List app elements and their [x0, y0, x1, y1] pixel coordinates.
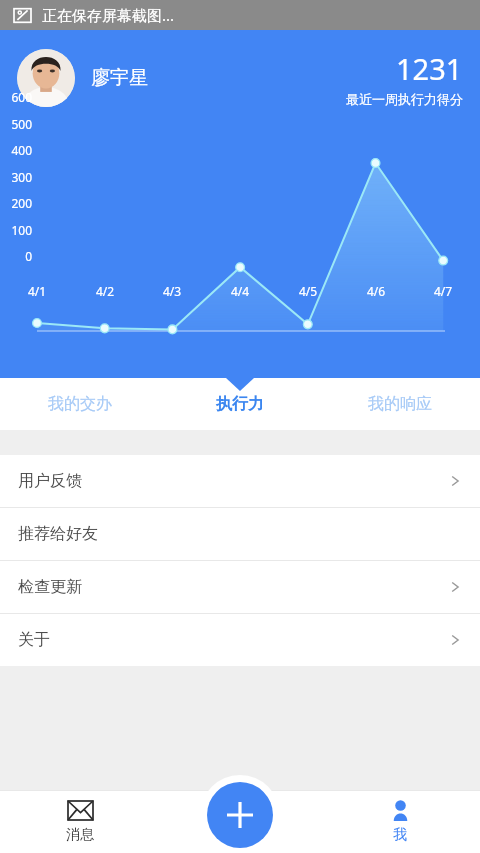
staticText: 最近一周执行力得分 [346, 91, 463, 107]
staticText: 我的响应 [368, 394, 432, 414]
button[interactable]: Add [207, 782, 273, 848]
staticText: 消息 [66, 826, 94, 844]
button[interactable]: Profile photo [17, 49, 75, 107]
staticText: 200 [0, 195, 32, 211]
staticText: 正在保存屏幕截图... [42, 5, 175, 25]
button[interactable]: 推荐给好友 [0, 508, 480, 560]
staticText: 0 [0, 248, 32, 264]
staticText: 500 [0, 116, 32, 132]
staticText: 廖宇星 [91, 66, 148, 90]
staticText: 推荐给好友 [18, 524, 98, 544]
staticText: 4/5 [288, 283, 328, 299]
staticText: 执行力 [216, 394, 264, 414]
button[interactable]: 我的响应 [320, 378, 480, 430]
staticText: 4/1 [17, 283, 57, 299]
button[interactable]: 检查更新 [0, 561, 480, 613]
staticText: 我的交办 [48, 394, 112, 414]
button[interactable]: 我 [320, 790, 480, 853]
staticText: 4/4 [220, 283, 260, 299]
staticText: 400 [0, 142, 32, 158]
staticText: 1231 [396, 49, 463, 88]
staticText: 100 [0, 222, 32, 238]
button[interactable]: 执行力 [160, 378, 320, 430]
staticText: 关于 [18, 630, 50, 650]
staticText: 检查更新 [18, 577, 82, 597]
staticText: 600 [0, 89, 32, 105]
staticText: 4/6 [356, 283, 396, 299]
staticText: 4/2 [85, 283, 125, 299]
staticText: 4/7 [423, 283, 463, 299]
staticText: 4/3 [152, 283, 192, 299]
staticText: 300 [0, 169, 32, 185]
button[interactable]: 关于 [0, 614, 480, 666]
staticText: 我 [393, 826, 407, 844]
button[interactable]: 我的交办 [0, 378, 160, 430]
staticText: 用户反馈 [18, 471, 82, 491]
button[interactable]: 消息 [0, 790, 160, 853]
button[interactable]: 用户反馈 [0, 455, 480, 507]
